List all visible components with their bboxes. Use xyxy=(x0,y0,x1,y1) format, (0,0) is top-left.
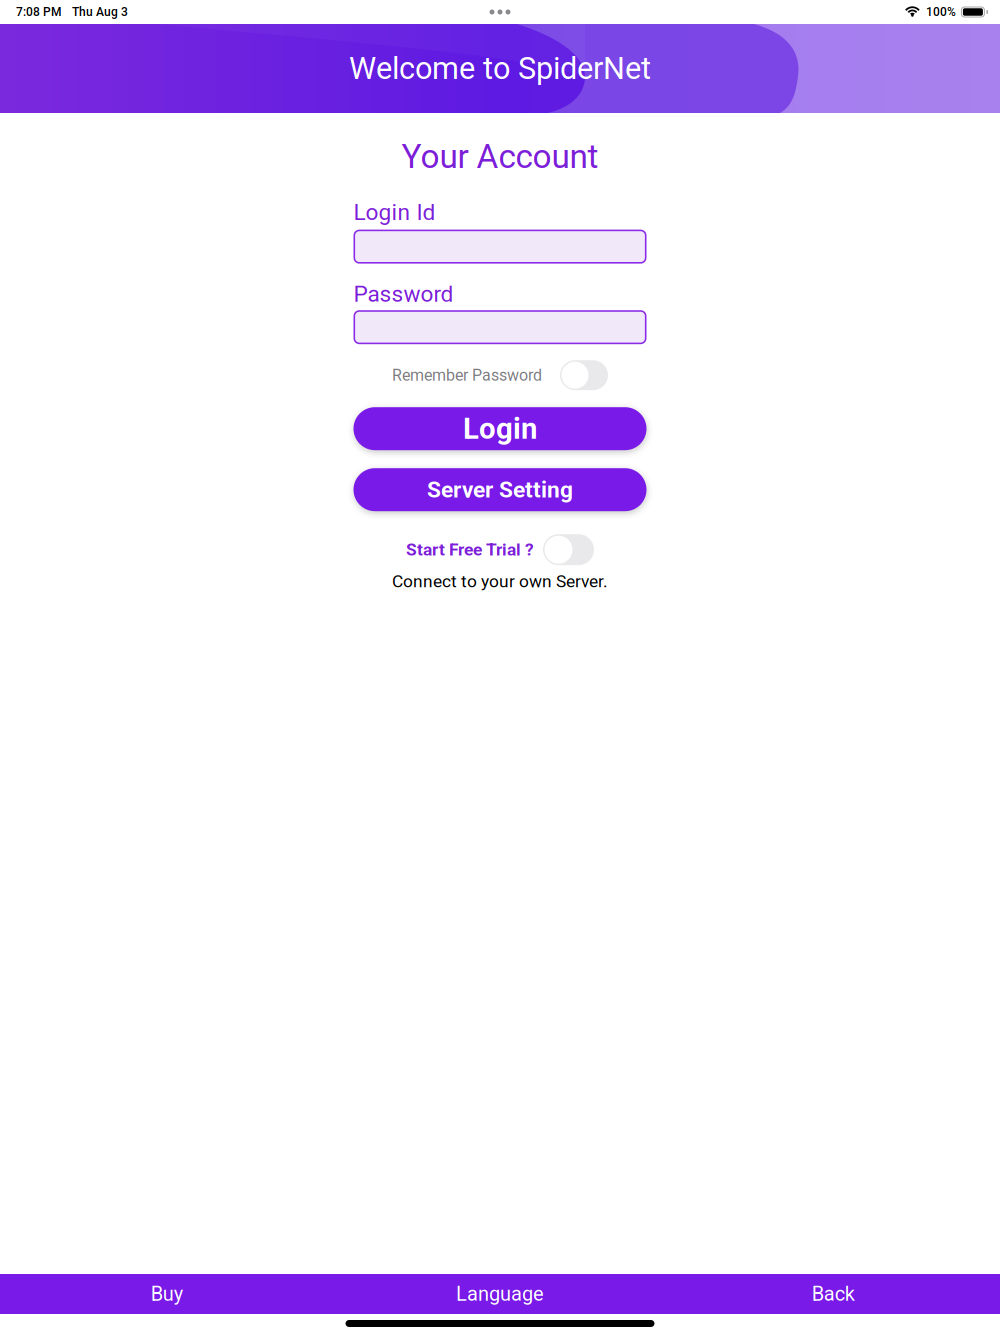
button[interactable]: Remember Password xyxy=(392,360,608,390)
staticText: Remember Password xyxy=(392,366,542,385)
button[interactable]: Back xyxy=(667,1274,1000,1314)
button[interactable]: Start Free Trial ? xyxy=(406,534,594,565)
staticText: Password xyxy=(353,281,453,307)
staticText: Login Id xyxy=(353,199,435,226)
button[interactable]: Buy xyxy=(0,1274,333,1314)
button[interactable]: Login xyxy=(353,407,646,450)
button[interactable]: Language xyxy=(333,1274,667,1314)
staticText: Buy xyxy=(151,1282,183,1306)
staticText: Start Free Trial ? xyxy=(406,539,534,560)
staticText: Thu Aug 3 xyxy=(72,5,128,19)
staticText: Welcome to SpiderNet xyxy=(349,50,651,86)
button[interactable]: Server Setting xyxy=(353,468,646,511)
staticText: Language xyxy=(456,1282,544,1306)
staticText: Back xyxy=(812,1282,855,1306)
staticText: 7:08 PM xyxy=(16,5,61,19)
staticText: Your Account xyxy=(401,137,598,176)
staticText: Connect to your own Server. xyxy=(392,571,608,591)
staticText: 100% xyxy=(926,5,956,19)
staticText: Server Setting xyxy=(427,476,573,503)
staticText: Login xyxy=(463,411,537,446)
